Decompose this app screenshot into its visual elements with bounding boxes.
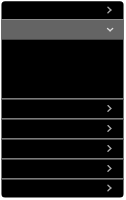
other: Expand section xyxy=(104,142,116,154)
button[interactable]: Section six xyxy=(2,158,124,178)
button[interactable]: Section five xyxy=(2,138,124,158)
other: Collapse section xyxy=(104,24,116,36)
button[interactable]: Section two xyxy=(2,19,124,40)
button[interactable]: Section three xyxy=(2,98,124,118)
other: Expand section xyxy=(104,102,116,114)
other: Expand section xyxy=(104,4,116,16)
other: Expand section xyxy=(104,162,116,174)
button[interactable]: Section four xyxy=(2,118,124,138)
other: Expand section xyxy=(104,182,116,194)
button[interactable]: Section one xyxy=(2,1,124,19)
other: Expand section xyxy=(104,122,116,134)
button[interactable]: Section seven xyxy=(2,178,124,197)
